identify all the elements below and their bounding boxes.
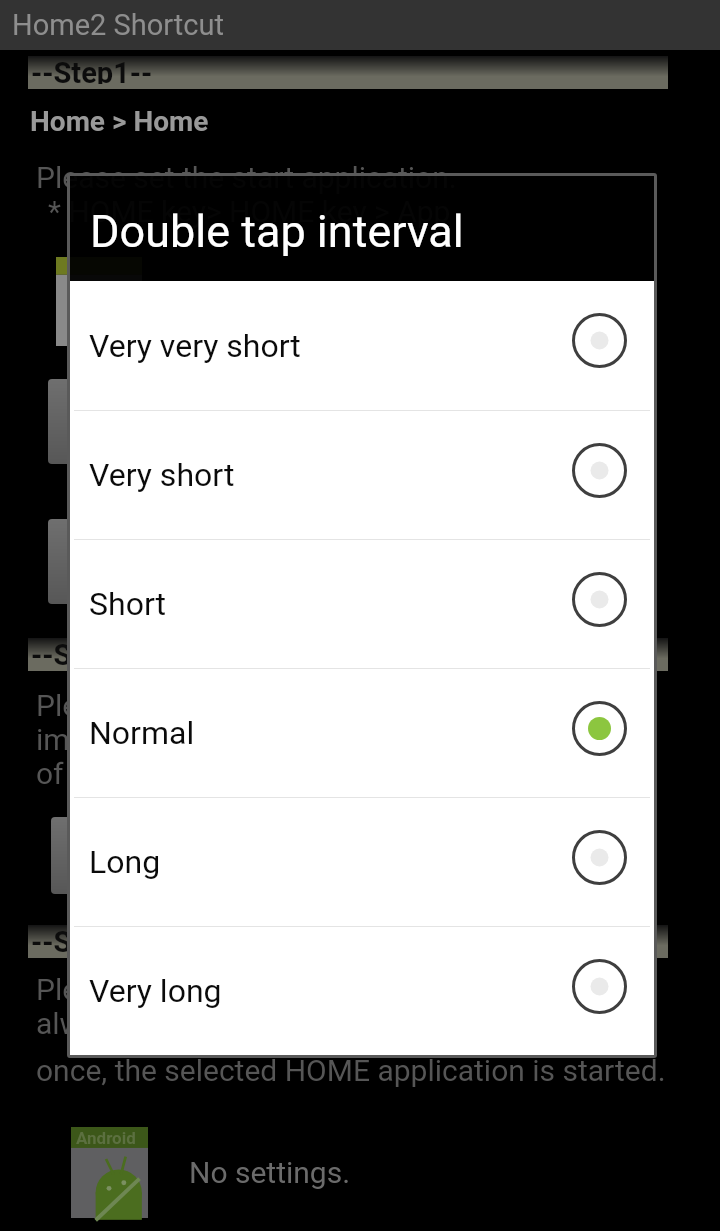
button[interactable]: Very long (70, 927, 654, 1055)
staticText: Short (89, 585, 166, 623)
button[interactable]: Android app icon (71, 1127, 148, 1218)
button[interactable]: Select interval (572, 959, 627, 1014)
button[interactable]: Select application (48, 379, 142, 464)
button[interactable]: Select interval (572, 443, 627, 498)
button[interactable]: Select interval (572, 701, 627, 756)
button[interactable]: Very very short (70, 281, 654, 410)
staticText: Long (89, 843, 161, 881)
button[interactable]: Normal (70, 669, 654, 797)
staticText: image and the size (36, 722, 287, 757)
staticText: once, the selected HOME application is s… (36, 1053, 666, 1088)
button[interactable]: Select interval (572, 572, 627, 627)
staticText: Very short (89, 456, 235, 494)
button[interactable]: Select interval (572, 830, 627, 885)
button[interactable]: Select application (51, 817, 145, 894)
button[interactable]: Select application (48, 519, 142, 604)
staticText: Home > Home (30, 105, 209, 138)
staticText: Android (76, 1128, 136, 1148)
button[interactable]: Long (70, 798, 654, 926)
staticText: --Step2-- (31, 638, 153, 666)
staticText: --Step3-- (31, 925, 153, 953)
button[interactable]: Home2 Shortcut (0, 0, 720, 50)
staticText: of the trigger area. (36, 756, 282, 791)
staticText: Home2 Shortcut (12, 8, 224, 42)
button[interactable]: Short (70, 540, 654, 668)
staticText: Please set the double tap (36, 688, 373, 723)
staticText: Please set the start application. (36, 160, 457, 195)
staticText: Please check the operation. (36, 972, 404, 1007)
staticText: Normal (89, 714, 195, 752)
button[interactable]: Select interval (572, 313, 627, 368)
staticText: * HOME key> HOME key > App (48, 194, 451, 229)
staticText: Double tap interval (90, 205, 464, 258)
staticText: always HOME key press (36, 1006, 354, 1041)
staticText: --Step1-- (31, 56, 153, 84)
staticText: No settings. (189, 1155, 351, 1190)
staticText: Very long (89, 972, 222, 1010)
button[interactable]: --Step2-- (28, 638, 668, 671)
staticText: Very very short (89, 327, 301, 365)
button[interactable]: --Step1-- (28, 56, 668, 89)
button[interactable]: --Step3-- (28, 925, 668, 958)
button[interactable]: Very short (70, 411, 654, 539)
button[interactable]: Current home application (56, 257, 142, 346)
